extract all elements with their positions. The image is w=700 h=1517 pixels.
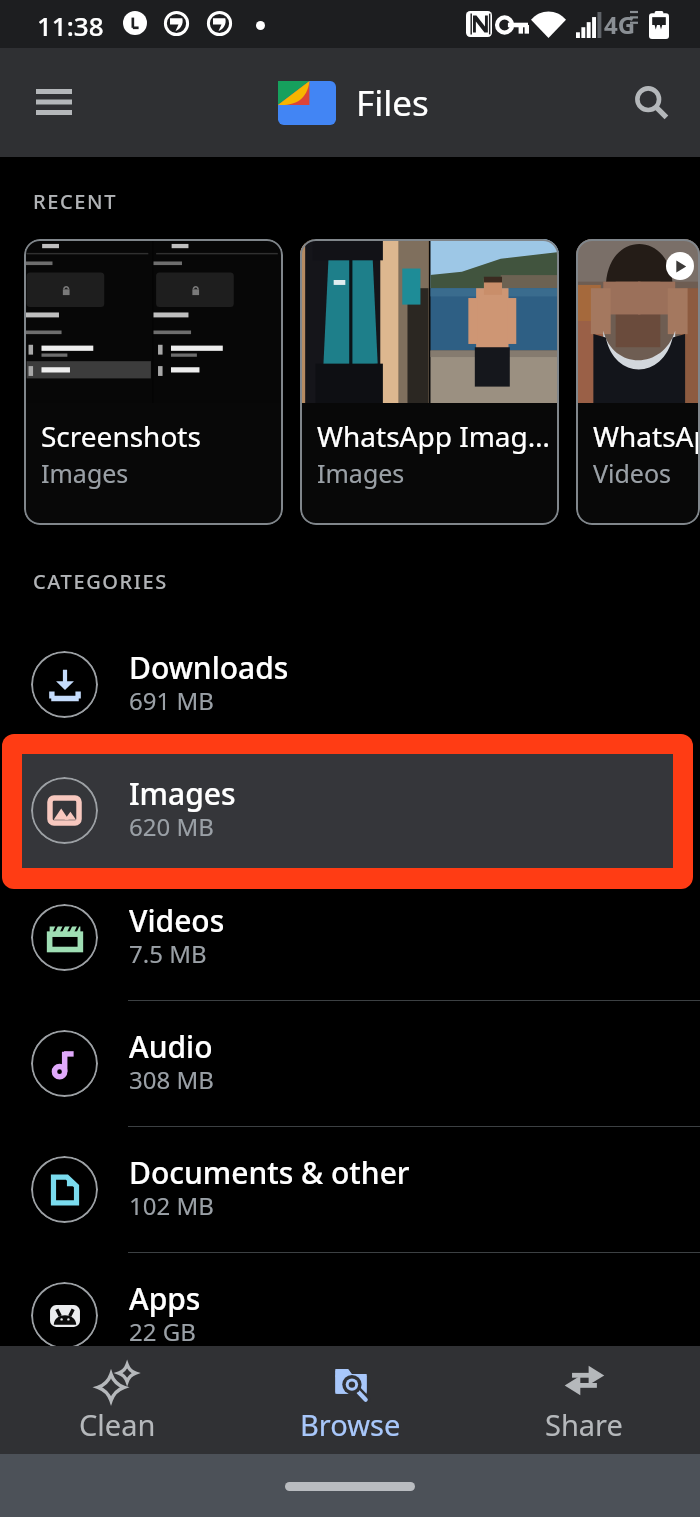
staticText: 102 MB bbox=[129, 1189, 214, 1222]
staticText: WhatsApp Imag… bbox=[317, 417, 550, 455]
staticText: Screenshots bbox=[41, 417, 201, 455]
button[interactable]: Downloads bbox=[0, 621, 700, 747]
staticText: Images bbox=[317, 456, 405, 490]
button[interactable]: Apps bbox=[0, 1252, 700, 1378]
button[interactable]: Clean bbox=[0, 1346, 234, 1454]
button[interactable]: Images bbox=[0, 747, 700, 873]
staticText: 22 GB bbox=[129, 1315, 196, 1348]
staticText: CATEGORIES bbox=[33, 568, 168, 595]
staticText: Audio bbox=[129, 1026, 213, 1067]
staticText: Videos bbox=[593, 456, 672, 490]
staticText: Videos bbox=[129, 900, 225, 941]
staticText: RECENT bbox=[33, 188, 117, 215]
button[interactable]: Open navigation menu bbox=[26, 74, 82, 130]
button[interactable]: Documents & other bbox=[0, 1126, 700, 1252]
button[interactable]: Search bbox=[624, 75, 680, 131]
button[interactable]: WhatsApp Vid bbox=[576, 239, 700, 525]
staticText: Clean bbox=[79, 1405, 156, 1444]
button[interactable]: Browse bbox=[234, 1346, 467, 1454]
button[interactable]: WhatsApp Imag… bbox=[300, 239, 559, 525]
staticText: 620 MB bbox=[129, 810, 214, 843]
staticText: 691 MB bbox=[129, 684, 214, 717]
button[interactable]: Audio bbox=[0, 1000, 700, 1126]
staticText: 4G bbox=[604, 8, 636, 41]
staticText: Apps bbox=[129, 1278, 201, 1319]
staticText: Images bbox=[129, 773, 236, 814]
staticText: Images bbox=[41, 456, 129, 490]
staticText: 7.5 MB bbox=[129, 937, 207, 970]
staticText: Files bbox=[356, 79, 429, 127]
staticText: 308 MB bbox=[129, 1063, 214, 1096]
button[interactable]: Screenshots bbox=[24, 239, 283, 525]
staticText: Downloads bbox=[129, 647, 289, 688]
staticText: Share bbox=[545, 1405, 623, 1444]
button[interactable]: Share bbox=[467, 1346, 700, 1454]
button[interactable]: Videos bbox=[0, 874, 700, 1000]
staticText: 11:38 bbox=[37, 8, 104, 43]
staticText: Browse bbox=[300, 1405, 401, 1444]
staticText: WhatsApp Vid bbox=[593, 417, 700, 455]
staticText: Documents & other bbox=[129, 1152, 410, 1193]
